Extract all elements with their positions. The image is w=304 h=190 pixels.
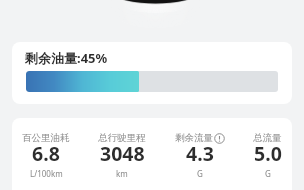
button[interactable]: 总流量 (253, 132, 282, 182)
staticText: 3048 (100, 140, 145, 167)
staticText: 百公里油耗 (22, 132, 70, 144)
staticText: 剩余油量:45% (25, 49, 108, 67)
button[interactable]: Data usage info (214, 133, 225, 144)
staticText: L/100km (30, 168, 63, 179)
staticText: 4.3 (186, 140, 214, 167)
button[interactable]: 剩余油量:45% (12, 42, 292, 104)
staticText: 总流量 (253, 132, 282, 144)
staticText: 剩余流量 (175, 132, 213, 144)
button[interactable]: 百公里油耗 (22, 132, 70, 182)
staticText: km (116, 168, 128, 179)
staticText: G (197, 168, 203, 179)
button[interactable]: 剩余流量 (175, 132, 225, 182)
staticText: G (265, 168, 271, 179)
staticText: 6.8 (32, 140, 60, 167)
staticText: 总行驶里程 (98, 132, 146, 144)
staticText: 5.0 (254, 140, 282, 167)
button[interactable]: 总行驶里程 (98, 132, 146, 182)
